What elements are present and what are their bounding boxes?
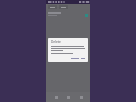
button[interactable]: Search — [65, 94, 71, 100]
button[interactable]: Delete — [59, 5, 68, 9]
button[interactable]: Edit — [48, 5, 57, 9]
button[interactable]: Profile — [78, 94, 84, 100]
button[interactable]: Home — [53, 94, 59, 100]
staticText: Delete — [51, 40, 61, 44]
button[interactable]: OK — [81, 57, 85, 60]
button[interactable]: CANCEL — [71, 57, 79, 60]
